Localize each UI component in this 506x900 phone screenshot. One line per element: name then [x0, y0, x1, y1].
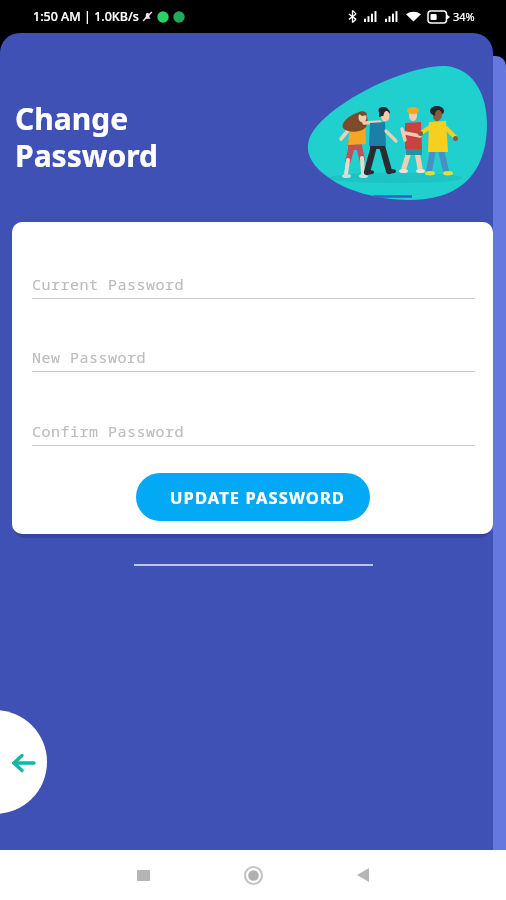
- staticText: UPDATE PASSWORD: [170, 486, 346, 508]
- button[interactable]: UPDATE PASSWORD: [136, 473, 370, 521]
- staticText: 1:50 AM | 1.0KB/s: [33, 8, 139, 25]
- staticText: New Password: [32, 347, 147, 367]
- button[interactable]: Current Password: [32, 274, 475, 299]
- button[interactable]: Confirm Password: [32, 421, 475, 446]
- staticText: Confirm Password: [32, 421, 185, 441]
- staticText: Password: [15, 135, 158, 176]
- staticText: Change: [15, 98, 129, 139]
- button[interactable]: Back: [318, 850, 408, 900]
- button[interactable]: Home: [188, 850, 318, 900]
- button[interactable]: Recents: [98, 850, 188, 900]
- staticText: 34%: [453, 9, 475, 24]
- button[interactable]: New Password: [32, 347, 475, 372]
- button[interactable]: Back: [0, 710, 47, 814]
- staticText: Current Password: [32, 274, 185, 294]
